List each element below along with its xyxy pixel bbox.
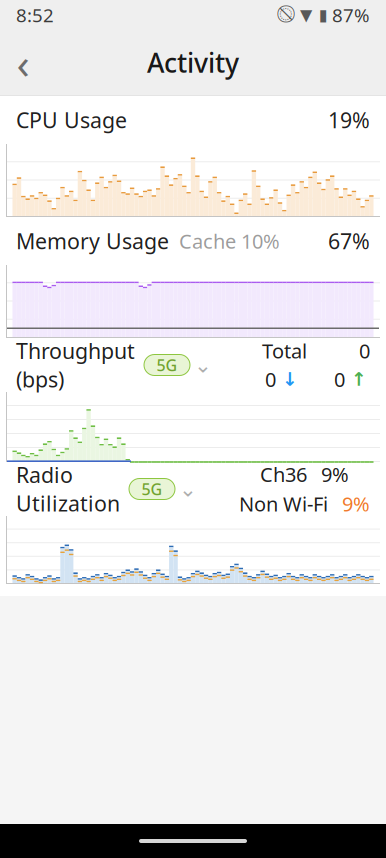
staticText: 0: [265, 366, 276, 393]
staticText: ↑: [345, 369, 367, 390]
staticText: Cache 10%: [169, 228, 280, 254]
button[interactable]: Select band 5G: [120, 478, 196, 499]
button[interactable]: Back: [0, 35, 46, 89]
staticText: 9%: [342, 490, 370, 517]
staticText: Ch36: [260, 461, 307, 487]
staticText: 67%: [328, 227, 370, 255]
staticText: 8:52: [16, 3, 54, 27]
staticText: Activity: [147, 45, 239, 80]
button[interactable]: Select band 5G: [135, 354, 211, 375]
staticText: ⌄: [179, 477, 197, 501]
staticText: Radio Utilization: [16, 461, 120, 517]
staticText: ▮: [319, 6, 328, 24]
staticText: 9%: [321, 461, 349, 487]
staticText: ‹: [16, 34, 29, 91]
staticText: 5G: [141, 478, 162, 500]
staticText: 0: [334, 366, 345, 393]
staticText: ⃠: [279, 6, 293, 23]
staticText: ⌄: [194, 353, 212, 377]
staticText: 19%: [328, 106, 370, 134]
staticText: ▼: [300, 6, 312, 24]
staticText: CPU Usage: [16, 106, 127, 134]
staticText: Memory Usage: [16, 227, 169, 255]
staticText: Total: [262, 337, 307, 364]
staticText: Non Wi-Fi: [239, 490, 328, 517]
staticText: ↓: [276, 369, 298, 390]
staticText: 87%: [332, 3, 370, 27]
staticText: 5G: [156, 354, 177, 376]
staticText: Throughput (bps): [16, 337, 135, 393]
staticText: 0: [359, 337, 370, 364]
